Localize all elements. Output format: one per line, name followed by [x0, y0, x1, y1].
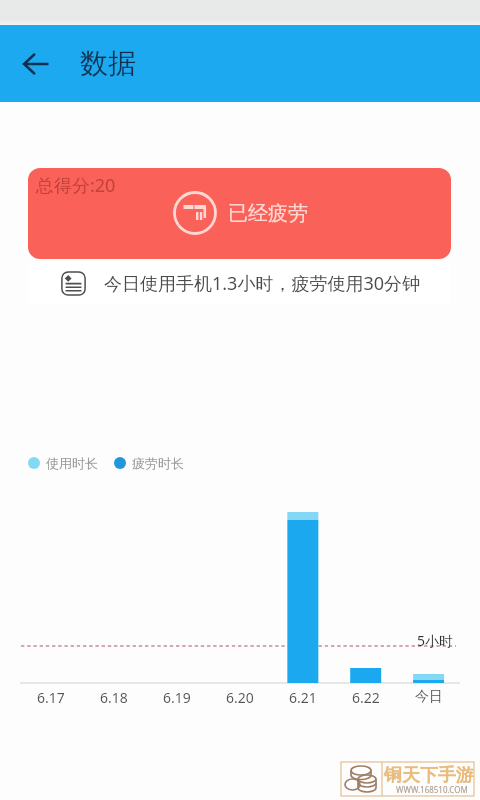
staticText: 今日使用手机1.3小时，疲劳使用30分钟	[104, 271, 421, 296]
button[interactable]: Back	[12, 40, 60, 88]
staticText: 6.22	[352, 688, 380, 707]
staticText: 今日	[415, 688, 443, 706]
staticText: 总得分:20	[36, 173, 116, 198]
staticText: 6.20	[226, 688, 254, 707]
staticText: 已经疲劳	[228, 201, 308, 226]
staticText: 铜天下手游	[384, 764, 474, 787]
staticText: 6.21	[289, 688, 317, 707]
staticText: 使用时长	[46, 455, 98, 471]
staticText: 6.18	[100, 688, 128, 707]
staticText: 5小时	[417, 631, 454, 650]
button[interactable]: 今日使用手机1.3小时，疲劳使用30分钟	[28, 261, 451, 305]
staticText: 数据	[80, 46, 136, 81]
button[interactable]: 总得分:20	[28, 168, 451, 259]
staticText: 疲劳时长	[132, 455, 184, 471]
staticText: 6.17	[37, 688, 65, 707]
staticText: WWW.168510.COM	[396, 784, 468, 795]
staticText: 6.19	[163, 688, 191, 707]
